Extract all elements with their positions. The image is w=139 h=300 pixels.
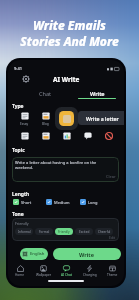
staticText: Essay bbox=[20, 122, 29, 126]
staticText: Formal bbox=[39, 230, 50, 234]
staticText: Clear bbox=[106, 174, 116, 179]
staticText: Write a letter about having a bonfire on… bbox=[15, 160, 97, 170]
button[interactable]: Write bbox=[53, 248, 121, 260]
staticText: Edit bbox=[109, 235, 116, 240]
button[interactable] bbox=[55, 107, 78, 130]
staticText: 9:41 bbox=[14, 66, 22, 71]
button[interactable]: Home bbox=[8, 265, 32, 277]
staticText: Write a letter bbox=[86, 115, 119, 122]
staticText: Tone bbox=[12, 211, 24, 218]
staticText: Informal bbox=[18, 230, 31, 234]
staticText: Wallpaper bbox=[36, 273, 52, 277]
staticText: AI Chat bbox=[61, 273, 72, 277]
staticText: AI Write bbox=[53, 75, 80, 84]
button[interactable]: Essay bbox=[16, 112, 33, 126]
button[interactable]: Cheerful bbox=[95, 228, 113, 235]
button[interactable]: Write a letter bbox=[78, 111, 124, 125]
staticText: Theme bbox=[107, 273, 118, 277]
button[interactable]: Settings bbox=[22, 75, 30, 83]
staticText: Topic bbox=[12, 147, 25, 154]
staticText: Short bbox=[21, 200, 32, 205]
staticText: Long bbox=[88, 200, 98, 205]
button[interactable]: Wallpaper bbox=[32, 265, 55, 277]
staticText: Poem bbox=[104, 122, 113, 126]
button[interactable]: Email bbox=[79, 112, 96, 126]
button[interactable]: Formal bbox=[35, 228, 53, 235]
staticText: Home bbox=[15, 273, 25, 277]
button[interactable]: Write bbox=[78, 90, 116, 101]
staticText: Friendly bbox=[15, 221, 29, 226]
button[interactable]: Writing type bbox=[79, 131, 96, 140]
staticText: Chat bbox=[39, 90, 51, 97]
button[interactable]: Blog bbox=[37, 112, 54, 126]
button[interactable]: Medium bbox=[46, 199, 80, 205]
button[interactable]: Writing type bbox=[37, 131, 54, 140]
button[interactable]: Theme bbox=[101, 265, 124, 277]
button[interactable]: Write a letter about having a bonfire on… bbox=[12, 157, 119, 182]
button[interactable]: Informal bbox=[15, 228, 33, 235]
staticText: Friendly bbox=[58, 230, 70, 234]
button[interactable]: Short bbox=[13, 199, 46, 205]
button[interactable]: Charging bbox=[78, 265, 101, 277]
staticText: Stories And More bbox=[20, 33, 119, 49]
staticText: Length bbox=[12, 191, 30, 198]
button[interactable]: English bbox=[20, 248, 48, 260]
button[interactable]: Friendly bbox=[55, 228, 73, 235]
staticText: Cheerful bbox=[98, 230, 111, 234]
staticText: English bbox=[30, 251, 45, 257]
staticText: Write bbox=[79, 251, 95, 258]
staticText: Medium bbox=[54, 200, 70, 205]
staticText: Write Emails bbox=[33, 17, 106, 33]
staticText: Write bbox=[90, 90, 105, 97]
button[interactable]: Writing type bbox=[100, 131, 117, 140]
staticText: Email bbox=[83, 122, 92, 126]
button[interactable]: Poem bbox=[100, 112, 117, 126]
button[interactable]: Long bbox=[80, 199, 114, 205]
button[interactable]: Writing type bbox=[58, 131, 75, 140]
staticText: Charging bbox=[83, 273, 97, 277]
staticText: Type bbox=[12, 103, 24, 110]
staticText: Excited bbox=[79, 230, 90, 234]
button[interactable]: Writing type bbox=[16, 131, 33, 140]
button[interactable]: AI Chat bbox=[55, 265, 78, 277]
staticText: Blog bbox=[42, 122, 49, 126]
button[interactable]: Excited bbox=[75, 228, 93, 235]
button[interactable]: Chat bbox=[26, 90, 64, 100]
